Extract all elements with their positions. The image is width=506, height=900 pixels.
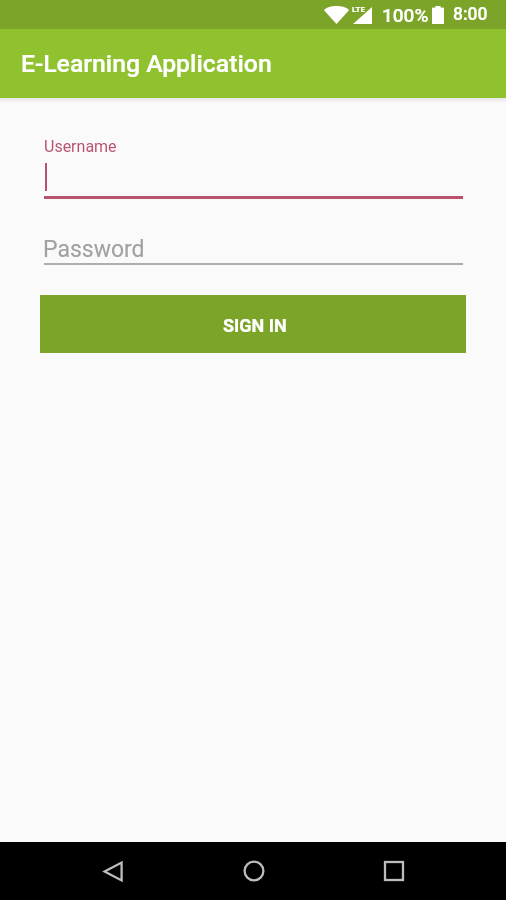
button[interactable]: SIGN IN bbox=[40, 295, 466, 353]
staticText: E-Learning Application bbox=[21, 49, 272, 78]
staticText: Username bbox=[44, 137, 117, 156]
button[interactable]: Username bbox=[40, 132, 466, 202]
staticText: 8:00 bbox=[453, 4, 488, 25]
staticText: SIGN IN bbox=[223, 315, 287, 336]
staticText: 100% bbox=[382, 4, 429, 26]
button[interactable]: Password bbox=[40, 230, 466, 270]
staticText: Password bbox=[43, 236, 145, 263]
button[interactable]: Back bbox=[73, 842, 154, 900]
button[interactable]: Home bbox=[213, 842, 294, 900]
button[interactable]: Recent apps bbox=[353, 842, 434, 900]
staticText: LTE bbox=[352, 5, 365, 14]
